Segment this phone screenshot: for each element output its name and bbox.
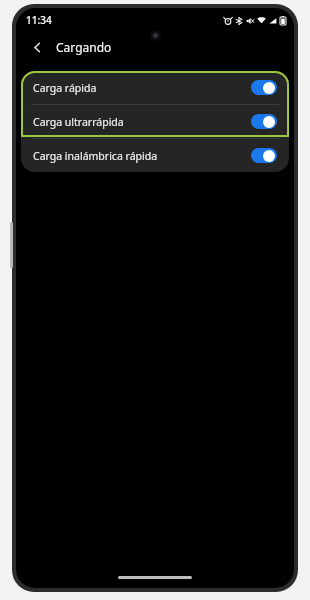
staticText: Carga rápida	[33, 81, 251, 95]
staticText: Cargando	[56, 39, 112, 55]
staticText: Carga inalámbrica rápida	[33, 149, 251, 163]
button[interactable]: Carga rápida	[21, 71, 289, 104]
button[interactable]: Carga ultrarrápida	[21, 105, 289, 138]
staticText: Carga ultrarrápida	[33, 115, 251, 129]
button[interactable]: Activar	[251, 148, 277, 163]
button[interactable]: Activar	[251, 80, 277, 95]
button[interactable]: Back	[26, 36, 48, 58]
button[interactable]: Activar	[251, 114, 277, 129]
staticText: 11:34	[26, 13, 52, 27]
button[interactable]: Carga inalámbrica rápida	[21, 139, 289, 172]
